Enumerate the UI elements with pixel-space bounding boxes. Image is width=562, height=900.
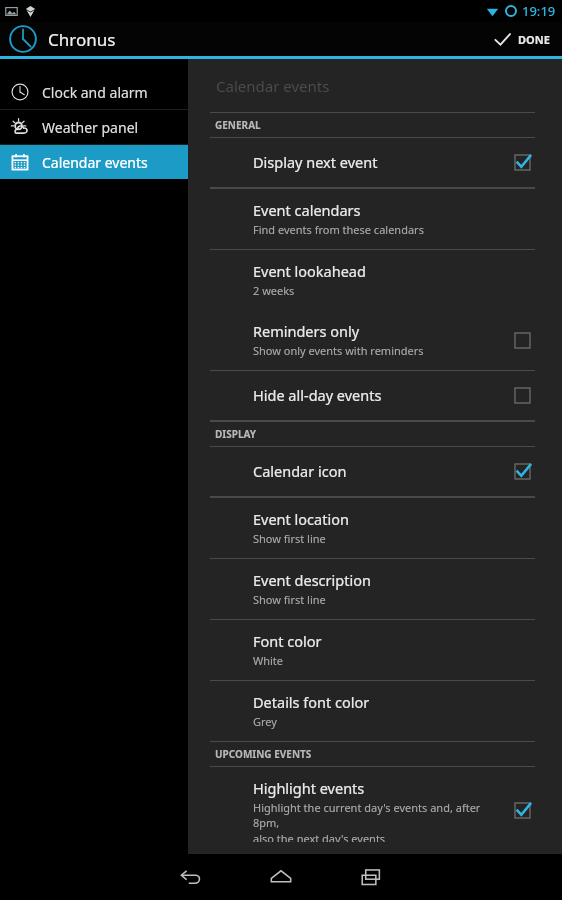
button[interactable]: Unchecked xyxy=(509,382,535,408)
button[interactable]: Checked xyxy=(509,149,535,175)
staticText: Find events from these calendars xyxy=(253,222,424,237)
staticText: Highlight events xyxy=(253,778,365,798)
staticText: White xyxy=(253,653,284,668)
staticText: Clock and alarm xyxy=(42,83,148,102)
staticText: UPCOMING EVENTS xyxy=(215,747,312,761)
staticText: Grey xyxy=(253,714,277,729)
button[interactable]: Event lookahead xyxy=(188,250,562,310)
button[interactable]: Back xyxy=(162,854,220,900)
staticText: Hide all-day events xyxy=(253,385,382,405)
staticText: GENERAL xyxy=(215,118,261,132)
button[interactable]: Checked xyxy=(509,797,535,823)
staticText: Event lookahead xyxy=(253,261,366,281)
staticText: Event description xyxy=(253,570,371,590)
staticText: Event calendars xyxy=(253,200,361,220)
button[interactable]: Display next event xyxy=(188,138,562,187)
button[interactable]: Reminders only xyxy=(188,310,562,370)
staticText: Reminders only xyxy=(253,321,360,341)
button[interactable]: Event location xyxy=(188,498,562,558)
staticText: Details font color xyxy=(253,692,370,712)
staticText: Weather panel xyxy=(42,118,139,137)
button[interactable]: Recents xyxy=(342,854,400,900)
staticText: 19:19 xyxy=(522,2,556,20)
button[interactable]: Unchecked xyxy=(509,327,535,353)
staticText: also the next day's events xyxy=(253,831,386,842)
staticText: DONE xyxy=(518,32,550,47)
button[interactable]: Event calendars xyxy=(188,189,562,249)
button[interactable]: Calendar icon xyxy=(188,447,562,496)
button[interactable]: Checked xyxy=(509,458,535,484)
button[interactable]: Details font color xyxy=(188,681,562,741)
button[interactable]: Hide all-day events xyxy=(188,371,562,420)
button[interactable]: Highlight events xyxy=(188,767,562,854)
staticText: 2 weeks xyxy=(253,283,295,298)
staticText: Display next event xyxy=(253,152,378,172)
staticText: Chronus xyxy=(48,28,116,51)
button[interactable]: Font color xyxy=(188,620,562,680)
staticText: Calendar icon xyxy=(253,461,347,481)
button[interactable]: Weather panel xyxy=(0,110,188,144)
staticText: DISPLAY xyxy=(215,427,257,441)
button[interactable]: Calendar events xyxy=(0,145,188,179)
button[interactable]: DONE xyxy=(482,22,562,56)
staticText: Calendar events xyxy=(42,153,148,172)
staticText: Highlight the current day's events and, … xyxy=(253,800,509,830)
staticText: Font color xyxy=(253,631,322,651)
button[interactable]: Event description xyxy=(188,559,562,619)
button[interactable]: Home xyxy=(252,854,310,900)
staticText: Calendar events xyxy=(216,76,330,96)
staticText: Event location xyxy=(253,509,349,529)
button[interactable]: Clock and alarm xyxy=(0,75,188,109)
staticText: Show first line xyxy=(253,531,326,546)
staticText: Show first line xyxy=(253,592,326,607)
staticText: Show only events with reminders xyxy=(253,343,424,358)
